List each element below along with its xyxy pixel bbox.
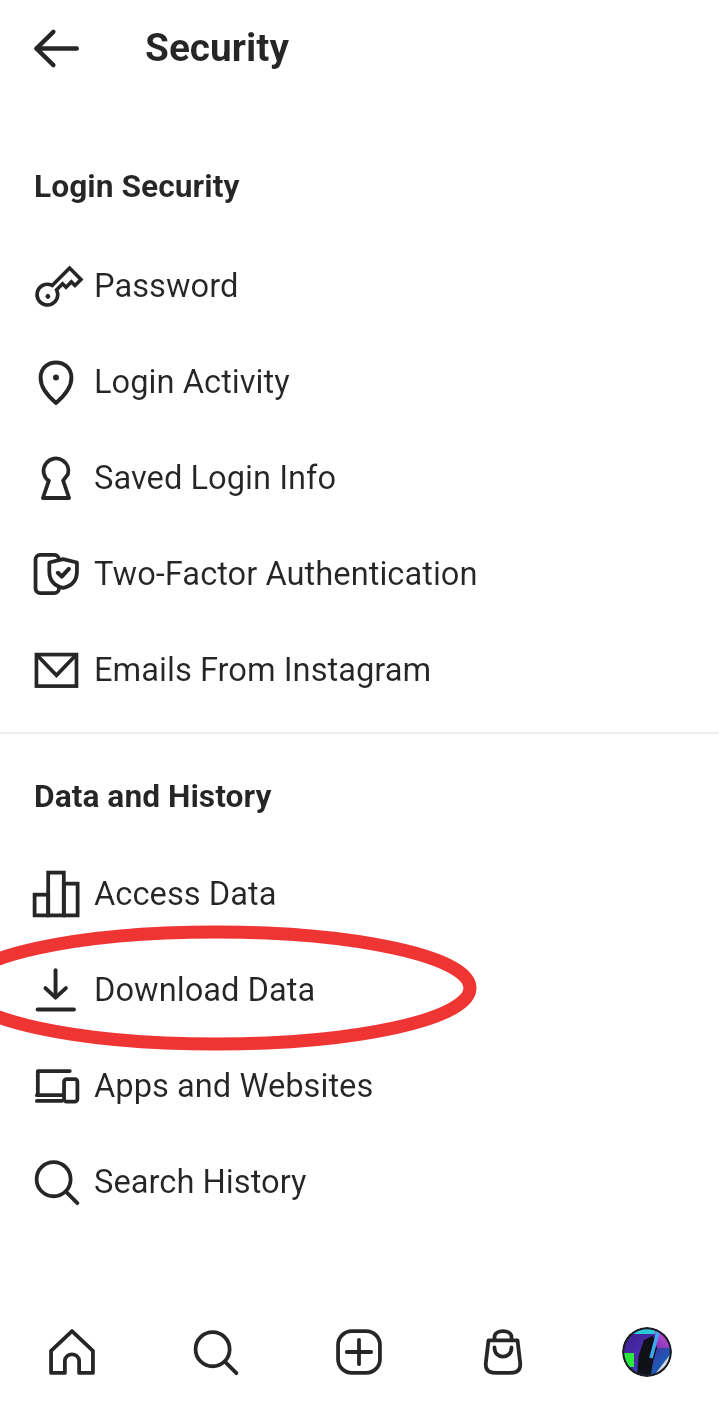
staticText: Emails From Instagram (94, 651, 432, 689)
button[interactable]: Shop (431, 1292, 575, 1412)
staticText: Login Security (34, 167, 240, 204)
staticText: Apps and Websites (94, 1067, 374, 1105)
staticText: Search History (94, 1163, 307, 1201)
staticText: Two-Factor Authentication (94, 555, 478, 593)
button[interactable]: Login Activity (0, 334, 719, 430)
button[interactable]: Emails From Instagram (0, 622, 719, 718)
staticText: Security (145, 25, 289, 70)
button[interactable]: Profile (622, 1327, 672, 1377)
button[interactable]: Search (143, 1292, 287, 1412)
button[interactable]: Access Data (0, 846, 719, 942)
button[interactable]: Saved Login Info (0, 430, 719, 526)
staticText: Saved Login Info (94, 459, 337, 497)
button[interactable]: Back (8, 0, 104, 96)
staticText: Password (94, 267, 239, 305)
button[interactable]: New post (287, 1292, 431, 1412)
button[interactable]: Two-Factor Authentication (0, 526, 719, 622)
staticText: Access Data (94, 875, 277, 913)
button[interactable]: Search History (0, 1134, 719, 1230)
button[interactable]: Download Data (0, 942, 719, 1038)
button[interactable]: Apps and Websites (0, 1038, 719, 1134)
button[interactable]: Password (0, 238, 719, 334)
staticText: Download Data (94, 971, 316, 1009)
staticText: Data and History (34, 777, 272, 814)
staticText: Login Activity (94, 363, 290, 401)
button[interactable]: Home (0, 1292, 143, 1412)
